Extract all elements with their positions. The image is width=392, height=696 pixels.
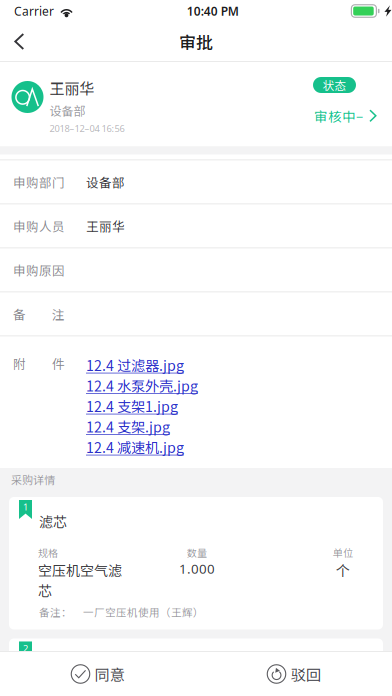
button[interactable]: 驳回 [196, 652, 392, 696]
staticText: 10:40 PM [187, 3, 239, 19]
staticText: 申购原因 [13, 261, 65, 279]
button[interactable]: 12.4 支架1.jpg [86, 395, 178, 416]
staticText: Carrier [14, 3, 54, 19]
staticText: 个 [336, 560, 350, 580]
staticText: 驳回 [291, 663, 321, 685]
staticText: 1.000 [179, 560, 215, 577]
staticText: 王丽华 [86, 217, 125, 235]
staticText: 申购部门 [13, 173, 65, 191]
staticText: 12.4 支架1.jpg [86, 395, 178, 416]
staticText: 审批 [179, 29, 213, 54]
button[interactable]: 12.4 过滤器.jpg [86, 354, 184, 375]
staticText: 2 [23, 642, 28, 655]
staticText: 状态 [322, 77, 346, 93]
staticText: 12.4 减速机.jpg [86, 436, 184, 457]
staticText: 同意 [95, 663, 125, 685]
staticText: 备 注 [13, 305, 65, 323]
staticText: 1 [23, 501, 28, 513]
staticText: 申购人员 [13, 217, 65, 235]
button[interactable]: 12.4 水泵外壳.jpg [86, 375, 198, 395]
staticText: 数量 [187, 545, 207, 560]
button[interactable]: 同意 [0, 652, 196, 696]
staticText: 12.4 水泵外壳.jpg [86, 375, 198, 396]
staticText: 设备部 [86, 173, 125, 191]
staticText: 备注： 一厂空压机使用（王辉） [39, 604, 204, 619]
staticText: 空压机空气滤芯 [38, 560, 122, 600]
staticText: 规格 [38, 545, 58, 560]
staticText: 单位 [333, 545, 353, 560]
staticText: 附 件 [13, 354, 65, 373]
staticText: 12.4 过滤器.jpg [86, 354, 184, 375]
button[interactable]: 12.4 支架.jpg [86, 416, 170, 436]
button[interactable]: 12.4 减速机.jpg [86, 436, 184, 457]
staticText: 滤芯 [39, 511, 67, 531]
staticText: 采购详情 [11, 471, 55, 487]
staticText: 审核中– [314, 106, 363, 125]
button[interactable]: 返回 [0, 22, 43, 61]
staticText: 王丽华 [49, 77, 94, 99]
staticText: 12.4 支架.jpg [86, 416, 170, 437]
button[interactable]: 王丽华 [0, 62, 392, 146]
staticText: 2018–12–04 16:56 [49, 122, 124, 134]
staticText: 设备部 [49, 102, 85, 119]
staticText: 密封圈 [39, 652, 81, 673]
